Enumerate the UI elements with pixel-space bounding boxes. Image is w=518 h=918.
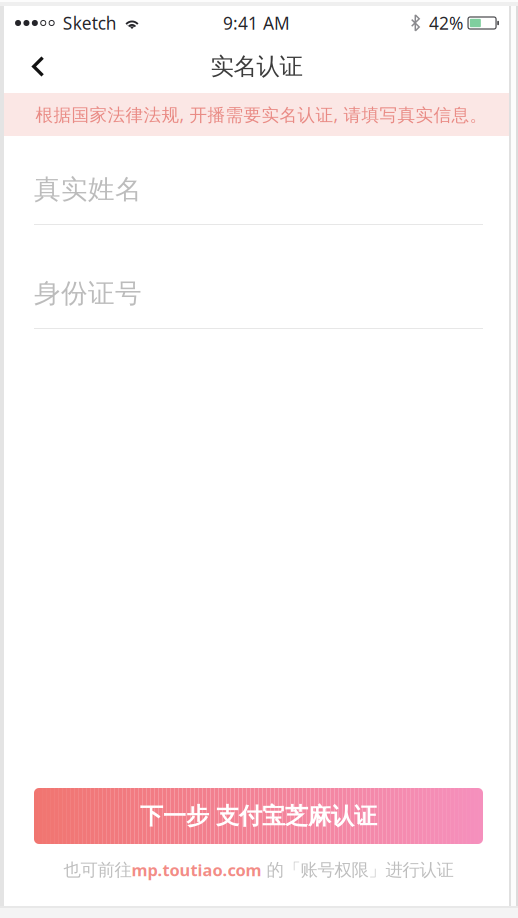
- staticText: 实名认证: [210, 52, 302, 81]
- staticText: 真实姓名: [34, 173, 142, 206]
- button[interactable]: 也可前往: [34, 856, 483, 884]
- staticText: 下一步 支付宝芝麻认证: [140, 801, 377, 831]
- staticText: 42%: [429, 11, 463, 34]
- staticText: mp.toutiao.com: [131, 859, 261, 881]
- staticText: Sketch: [63, 11, 117, 34]
- button[interactable]: 下一步 支付宝芝麻认证: [34, 788, 483, 844]
- staticText: 也可前往: [63, 859, 131, 881]
- staticText: 根据国家法律法规, 开播需要实名认证, 请填写真实信息。: [35, 102, 487, 126]
- button[interactable]: Back: [4, 40, 72, 93]
- staticText: 9:41 AM: [223, 11, 290, 34]
- staticText: 身份证号: [34, 277, 142, 310]
- staticText: 的「账号权限」进行认证: [261, 859, 453, 881]
- button[interactable]: 身份证号: [34, 259, 483, 329]
- button[interactable]: 真实姓名: [34, 155, 483, 225]
